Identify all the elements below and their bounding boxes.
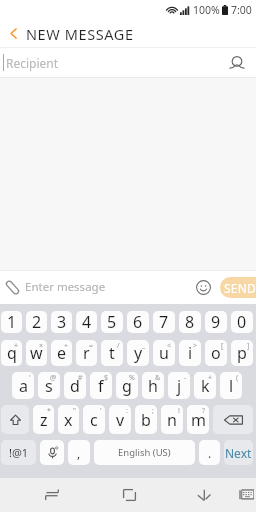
button[interactable]: Switch keyboard — [230, 478, 256, 512]
button[interactable]: 2 — [26, 311, 47, 333]
staticText: ? — [202, 406, 206, 416]
button[interactable]: z — [33, 405, 54, 434]
button[interactable]: s — [38, 372, 60, 399]
button[interactable]: v — [109, 405, 131, 434]
staticText: , — [77, 445, 81, 461]
staticText: 6 — [133, 311, 143, 333]
button[interactable]: n — [161, 405, 183, 434]
button[interactable]: q — [1, 340, 22, 366]
button[interactable]: Emoji — [192, 276, 214, 298]
button[interactable]: r — [76, 340, 97, 366]
staticText: h — [148, 375, 158, 397]
staticText: !@1 — [9, 445, 29, 460]
button[interactable]: Voice input — [40, 440, 64, 465]
staticText: " — [73, 406, 76, 416]
staticText: * — [47, 406, 51, 416]
staticText: English (US) — [118, 446, 171, 459]
button[interactable]: , — [68, 440, 90, 465]
staticText: ! — [178, 406, 180, 416]
staticText: < — [167, 341, 172, 351]
staticText: g — [122, 375, 132, 397]
staticText: q — [7, 342, 17, 364]
button[interactable]: k — [194, 372, 216, 399]
staticText: j — [177, 375, 182, 397]
button[interactable]: Recent apps — [36, 478, 68, 512]
button[interactable]: e — [51, 340, 72, 366]
button[interactable]: p — [231, 340, 253, 366]
button[interactable]: 0 — [231, 311, 253, 333]
button[interactable]: Hide keyboard — [188, 478, 220, 512]
staticText: b — [141, 409, 151, 431]
staticText: [ — [221, 341, 224, 351]
button[interactable]: t — [101, 340, 123, 366]
button[interactable]: c — [83, 405, 105, 434]
button[interactable]: 7 — [153, 311, 175, 333]
staticText: Next — [225, 445, 252, 461]
staticText: e — [57, 342, 67, 364]
button[interactable]: 9 — [205, 311, 227, 333]
staticText: r — [83, 342, 90, 364]
button[interactable]: Home — [113, 478, 145, 512]
button[interactable]: 1 — [1, 311, 22, 333]
staticText: d — [70, 375, 80, 397]
staticText: _ — [142, 341, 146, 351]
button[interactable]: g — [116, 372, 138, 399]
staticText: 4 — [82, 311, 92, 333]
staticText: n — [167, 409, 177, 431]
button[interactable]: u — [153, 340, 175, 366]
staticText: - — [184, 373, 187, 383]
staticText: s — [45, 375, 53, 397]
button[interactable]: i — [179, 340, 201, 366]
button[interactable]: m — [187, 405, 209, 434]
staticText: / — [117, 341, 120, 351]
button[interactable]: 8 — [179, 311, 201, 333]
button[interactable]: SEND — [220, 277, 256, 298]
staticText: Recipient — [6, 55, 59, 71]
staticText: w — [30, 342, 43, 364]
staticText: # — [78, 373, 83, 383]
button[interactable]: Add recipient — [226, 52, 248, 74]
button[interactable]: Backspace — [213, 405, 253, 434]
button[interactable]: Back — [0, 20, 26, 47]
staticText: + — [208, 373, 213, 383]
button[interactable]: y — [127, 340, 149, 366]
staticText: = — [89, 341, 94, 351]
staticText: × — [39, 341, 44, 351]
button[interactable]: l — [220, 372, 242, 399]
staticText: v — [116, 409, 125, 431]
button[interactable]: !@1 — [1, 440, 36, 465]
staticText: ( — [236, 373, 239, 383]
staticText: 7 — [159, 311, 169, 333]
button[interactable]: 6 — [127, 311, 149, 333]
button[interactable]: a — [12, 372, 34, 399]
staticText: . — [208, 445, 212, 461]
staticText: 3 — [57, 311, 67, 333]
button[interactable]: x — [58, 405, 79, 434]
button[interactable]: English (US) — [94, 440, 195, 465]
button[interactable]: h — [142, 372, 164, 399]
button[interactable]: j — [168, 372, 190, 399]
button[interactable]: 4 — [76, 311, 97, 333]
staticText: f — [98, 375, 104, 397]
button[interactable]: . — [199, 440, 220, 465]
button[interactable]: d — [64, 372, 86, 399]
staticText: @ — [50, 373, 57, 383]
button[interactable]: w — [26, 340, 47, 366]
button[interactable]: 3 — [51, 311, 72, 333]
staticText: 9 — [211, 311, 221, 333]
staticText: 5 — [107, 311, 117, 333]
staticText: 2 — [32, 311, 42, 333]
button[interactable]: Next — [224, 440, 253, 465]
staticText: c — [90, 409, 98, 431]
button[interactable]: o — [205, 340, 227, 366]
button[interactable]: f — [90, 372, 112, 399]
button[interactable]: 5 — [101, 311, 123, 333]
staticText: + — [14, 341, 19, 351]
button[interactable]: Attach file — [1, 276, 23, 298]
button[interactable]: Shift — [1, 405, 29, 434]
staticText: ' — [100, 406, 102, 416]
staticText: k — [201, 375, 210, 397]
staticText: i — [188, 342, 193, 364]
staticText: 100% — [193, 3, 220, 17]
button[interactable]: b — [135, 405, 157, 434]
